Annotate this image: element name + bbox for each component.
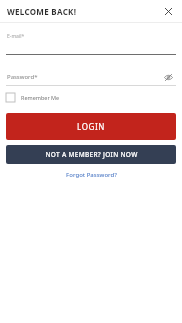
- staticText: WELCOME BACK!: [7, 6, 77, 17]
- button[interactable]: LOGIN: [6, 113, 176, 140]
- button[interactable]: Show password: [161, 71, 175, 83]
- staticText: NOT A MEMBER? JOIN NOW: [45, 150, 138, 159]
- button[interactable]: Password*: [7, 71, 175, 83]
- staticText: Password*: [7, 73, 38, 81]
- button[interactable]: E-mail*: [7, 33, 175, 54]
- staticText: LOGIN: [77, 121, 105, 132]
- button[interactable]: Forgot Password?: [0, 171, 182, 179]
- button[interactable]: Close: [160, 3, 176, 19]
- staticText: Remember Me: [21, 94, 60, 101]
- button[interactable]: Remember Me: [6, 93, 60, 102]
- staticText: E-mail*: [7, 33, 25, 40]
- button[interactable]: NOT A MEMBER? JOIN NOW: [6, 145, 176, 164]
- staticText: Forgot Password?: [66, 171, 117, 179]
